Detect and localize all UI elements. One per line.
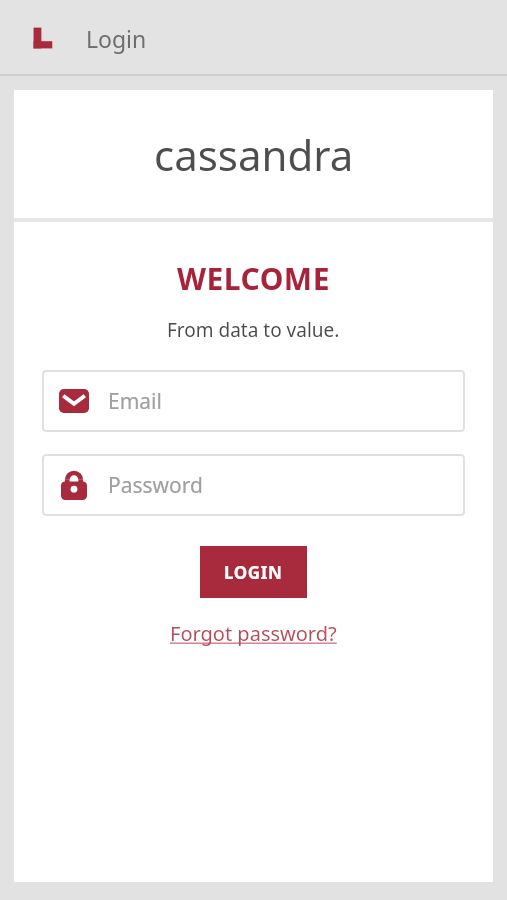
staticText: Login [86,23,147,54]
staticText: Password [108,471,203,500]
staticText: Email [108,387,162,416]
button[interactable]: Menu [28,21,62,55]
staticText: cassandra [154,126,354,183]
button[interactable]: Email [42,370,465,432]
staticText: WELCOME [177,258,330,299]
staticText: LOGIN [224,561,283,584]
button[interactable]: Password [42,454,465,516]
button[interactable]: Forgot password? [170,620,337,647]
button[interactable]: LOGIN [200,546,307,598]
staticText: From data to value. [167,317,340,343]
staticText: Forgot password? [170,620,337,647]
